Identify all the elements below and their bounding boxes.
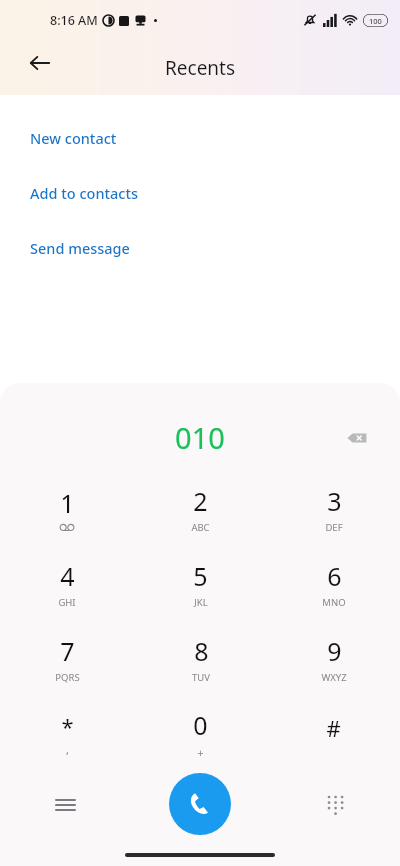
staticText: +	[197, 745, 204, 760]
staticText: MNO	[322, 596, 346, 609]
button[interactable]: Add to contacts	[0, 165, 400, 220]
button[interactable]: New contact	[0, 110, 400, 165]
staticText: 100	[369, 16, 382, 26]
staticText: 9	[327, 634, 342, 668]
staticText: 5	[193, 559, 208, 593]
staticText: WXYZ	[321, 671, 347, 684]
staticText: Add to contacts	[30, 183, 139, 203]
staticText: 1	[60, 486, 75, 520]
button[interactable]: 3	[267, 471, 400, 546]
staticText: 010	[175, 418, 225, 457]
staticText: Send message	[30, 238, 130, 258]
staticText: New contact	[30, 128, 117, 148]
button[interactable]: *	[0, 696, 134, 771]
staticText: 2	[193, 484, 208, 518]
staticText: 0	[193, 708, 208, 742]
button[interactable]: 8	[134, 621, 267, 696]
staticText: ABC	[191, 521, 210, 534]
staticText: 4	[60, 559, 75, 593]
staticText: 6	[327, 559, 342, 593]
button[interactable]: Menu	[41, 781, 89, 829]
staticText: 8	[194, 634, 209, 668]
staticText: #	[326, 713, 341, 743]
staticText: JKL	[194, 596, 208, 609]
staticText: *	[61, 711, 74, 741]
button[interactable]: Dialpad	[311, 781, 359, 829]
button[interactable]: 7	[0, 621, 134, 696]
staticText: 8:16 AM	[50, 12, 98, 29]
staticText: DEF	[325, 521, 343, 534]
staticText: PQRS	[55, 671, 80, 684]
button[interactable]: 5	[134, 546, 267, 621]
staticText: 3	[327, 484, 342, 518]
staticText: TUV	[192, 671, 210, 684]
staticText: Recents	[165, 55, 236, 81]
staticText: ,	[66, 742, 69, 757]
button[interactable]: 0	[134, 696, 267, 771]
staticText: 7	[60, 634, 75, 668]
button[interactable]: Send message	[0, 220, 400, 275]
button[interactable]: #	[267, 696, 400, 771]
button[interactable]: 4	[0, 546, 134, 621]
button[interactable]: 1	[0, 471, 134, 546]
button[interactable]: 9	[267, 621, 400, 696]
button[interactable]: Call	[169, 773, 231, 835]
button[interactable]: 2	[134, 471, 267, 546]
button[interactable]: Back	[20, 43, 60, 83]
button[interactable]: Backspace	[335, 416, 379, 460]
staticText: GHI	[58, 596, 76, 609]
button[interactable]: 6	[267, 546, 400, 621]
